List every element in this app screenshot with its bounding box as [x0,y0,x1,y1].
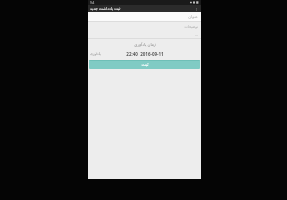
staticText: ثبت یادداشت جدید [90,6,121,11]
button[interactable]: ثبت [89,60,200,69]
staticText: یادآوری [90,52,101,56]
button[interactable]: ثبت یادداشت جدید [88,5,201,12]
button[interactable]: More options [193,6,199,12]
button[interactable]: عنوان [88,12,201,21]
staticText: عنوان [188,14,198,19]
button[interactable]: توضیحات [88,22,201,31]
staticText: زمان یادآوری [134,42,156,47]
staticText: ثبت [141,62,149,67]
staticText: 9:4 [90,1,95,5]
staticText: 22:40 2016-09-11 [126,51,164,57]
staticText: … [195,32,199,37]
staticText: توضیحات [184,25,198,29]
